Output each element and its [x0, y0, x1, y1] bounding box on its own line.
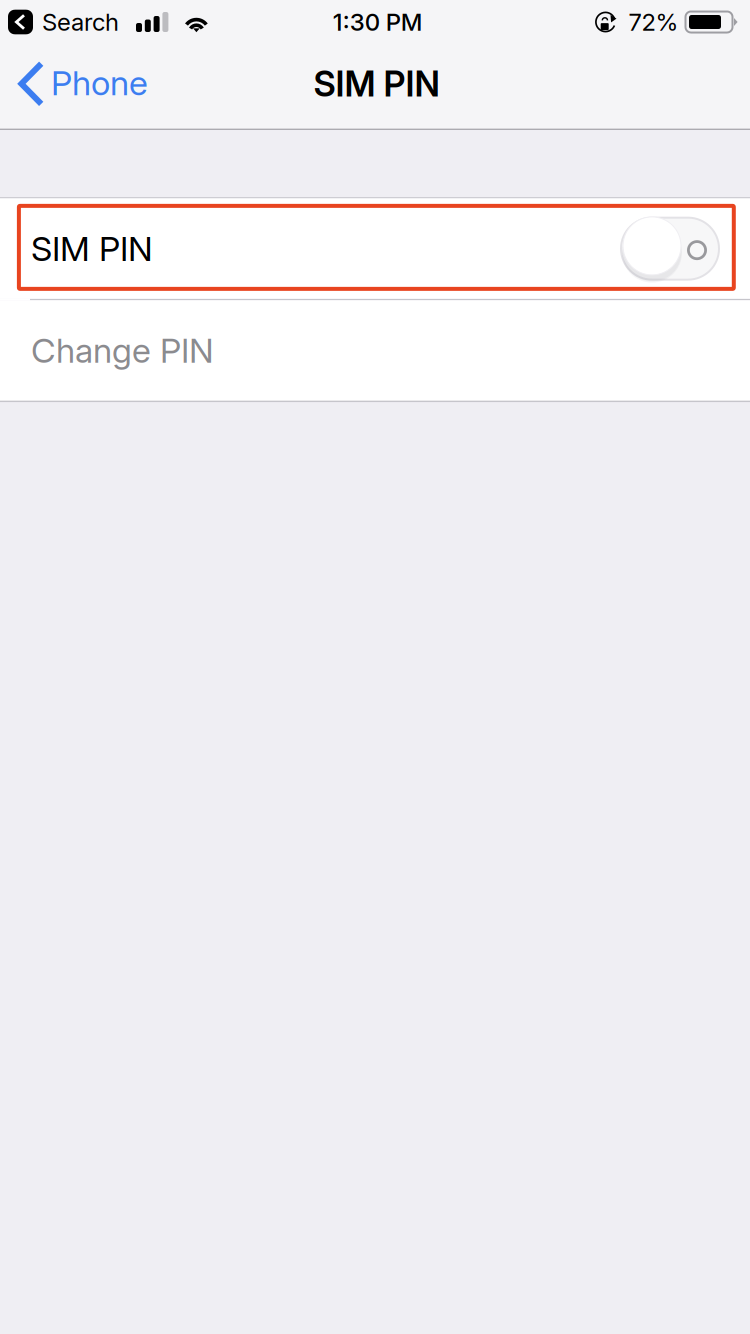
- button[interactable]: Back to Search: [8, 7, 119, 36]
- staticText: 1:30 PM: [333, 7, 423, 36]
- staticText: Phone: [51, 62, 148, 103]
- staticText: SIM PIN: [31, 228, 153, 269]
- button[interactable]: Change PIN: [0, 300, 750, 401]
- staticText: Change PIN: [31, 330, 214, 371]
- staticText: Search: [42, 7, 119, 36]
- button[interactable]: Phone: [0, 44, 162, 128]
- button[interactable]: SIM PIN: [0, 198, 750, 299]
- staticText: SIM PIN: [313, 63, 439, 105]
- staticText: 72%: [628, 7, 678, 36]
